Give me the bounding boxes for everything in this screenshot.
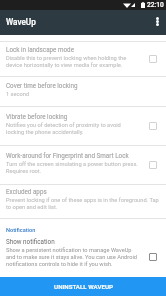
button[interactable]: Toggle Lock in landscape mode (149, 55, 157, 63)
staticText: WaveUp (6, 17, 36, 27)
button[interactable]: Excluded apps (0, 185, 166, 219)
button[interactable]: Toggle Show notification (149, 253, 157, 261)
staticText: UNINSTALL WAVEUP (54, 283, 113, 290)
button[interactable]: Show notification (0, 237, 166, 277)
staticText: Vibrate before locking (6, 113, 68, 120)
staticText: Prevent locking if one of these apps is … (6, 197, 159, 211)
staticText: Show notification (6, 238, 55, 245)
button[interactable]: More options (148, 10, 166, 35)
staticText: Notifies you of detection of proximity t… (6, 122, 121, 136)
staticText: Cover time before locking (6, 82, 78, 89)
button[interactable]: Cover time before locking (0, 77, 166, 107)
staticText: Lock in landscape mode (6, 46, 74, 53)
button[interactable]: Lock in landscape mode (0, 42, 166, 77)
button[interactable]: UNINSTALL WAVEUP (0, 277, 166, 296)
staticText: 22:10 (147, 1, 164, 9)
staticText: Excluded apps (6, 188, 47, 195)
button[interactable]: Toggle Work-around for Fingerprint and S… (149, 161, 157, 169)
staticText: Disable this to prevent locking when hol… (6, 55, 127, 69)
staticText: Turn off the screen simulating a power b… (6, 161, 138, 175)
staticText: Notification (6, 227, 36, 234)
button[interactable]: Work-around for Fingerprint and Smart Lo… (0, 146, 166, 185)
staticText: Show a persistent notification to manage… (6, 247, 137, 268)
staticText: 1 second (6, 91, 30, 98)
staticText: Work-around for Fingerprint and Smart Lo… (6, 152, 129, 159)
button[interactable]: Toggle Vibrate before locking (149, 122, 157, 130)
button[interactable]: Vibrate before locking (0, 107, 166, 146)
